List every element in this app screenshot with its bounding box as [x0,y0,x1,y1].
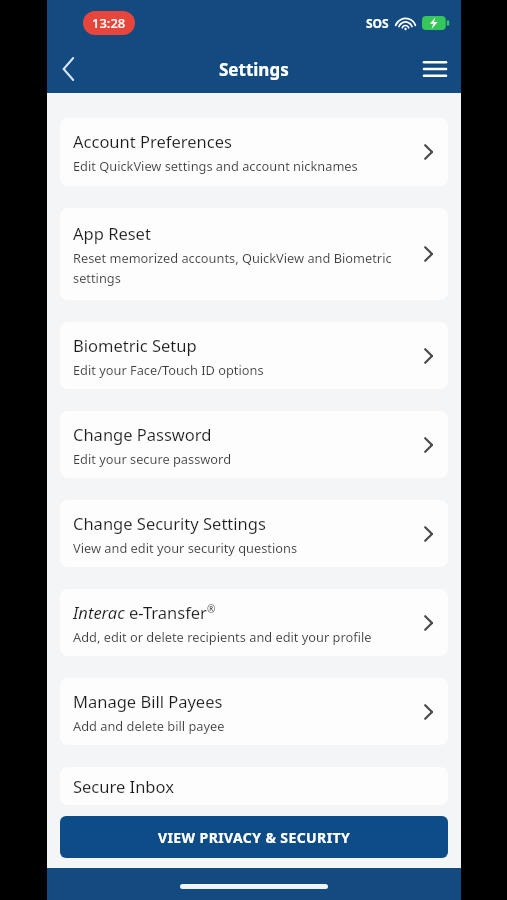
staticText: Edit your Face/Touch ID options [73,361,264,378]
staticText: VIEW PRIVACY & SECURITY [158,828,351,847]
button[interactable]: Menu [415,49,455,89]
staticText: Edit your secure password [73,450,232,467]
button[interactable]: VIEW PRIVACY & SECURITY [60,816,448,858]
staticText: Edit QuickView settings and account nick… [73,157,358,174]
staticText: Account Preferences [73,130,232,152]
button[interactable]: Secure Inbox [60,767,448,805]
staticText: Add, edit or delete recipients and edit … [73,628,372,645]
button[interactable]: Account Preferences [60,118,448,186]
button[interactable]: Biometric Setup [60,322,448,389]
staticText: SOS [366,15,389,31]
staticText: Manage Bill Payees [73,690,223,712]
staticText: Change Password [73,423,212,445]
staticText: Secure Inbox [73,775,174,797]
staticText: Reset memorized accounts, QuickView and … [73,249,392,287]
staticText: View and edit your security questions [73,539,298,556]
button[interactable]: Manage Bill Payees [60,678,448,745]
staticText: 13:28 [92,14,126,32]
button[interactable]: Change Password [60,411,448,478]
staticText: Change Security Settings [73,512,266,534]
staticText: Add and delete bill payee [73,717,225,734]
button[interactable]: Interac e-Transfer® [60,589,448,656]
staticText: Settings [219,58,289,81]
staticText: Interac e-Transfer® [73,601,216,623]
button[interactable]: Back [47,47,91,91]
button[interactable]: App Reset [60,208,448,300]
staticText: App Reset [73,222,151,244]
staticText: Biometric Setup [73,334,197,356]
button[interactable]: Change Security Settings [60,500,448,567]
